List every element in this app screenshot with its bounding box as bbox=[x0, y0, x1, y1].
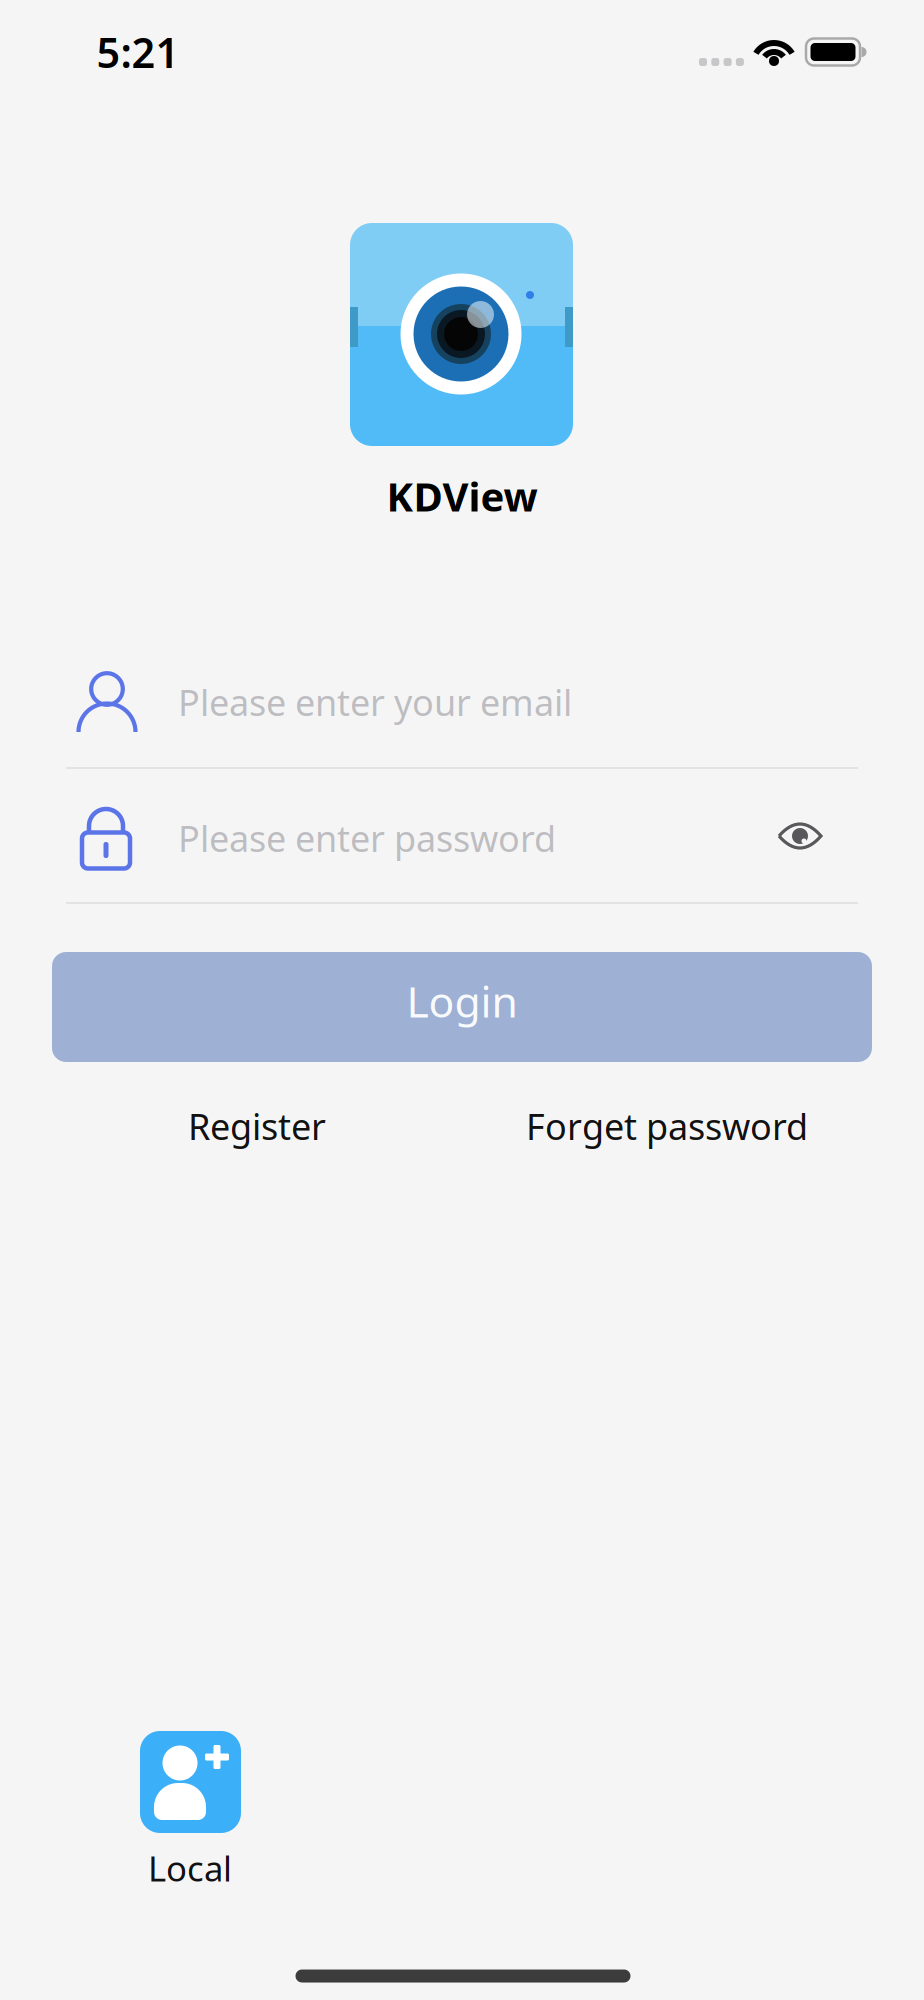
button[interactable]: Register bbox=[188, 1102, 326, 1150]
staticText: Forget password bbox=[526, 1102, 808, 1150]
staticText: Please enter your email bbox=[178, 678, 572, 726]
staticText: 5:21 bbox=[96, 25, 179, 79]
button[interactable]: Show password bbox=[772, 814, 828, 858]
staticText: Please enter password bbox=[178, 814, 556, 862]
button[interactable]: Local bbox=[140, 1731, 241, 1901]
staticText: KDView bbox=[386, 469, 537, 522]
button[interactable]: Login bbox=[52, 952, 872, 1062]
button[interactable]: Forget password bbox=[526, 1102, 808, 1150]
staticText: Local bbox=[148, 1845, 232, 1891]
staticText: Login bbox=[406, 973, 517, 1029]
staticText: Register bbox=[188, 1102, 326, 1150]
